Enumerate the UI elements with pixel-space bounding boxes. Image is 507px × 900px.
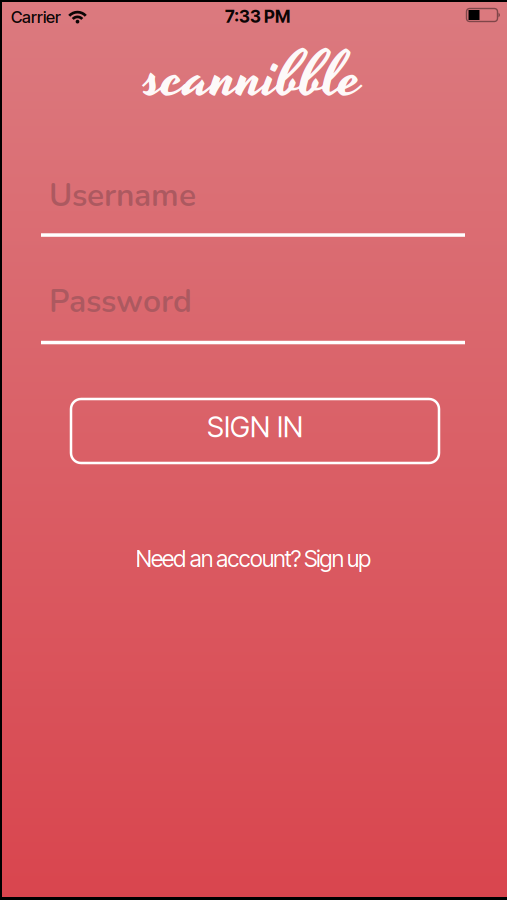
staticText: SIGN IN — [207, 410, 303, 444]
staticText: Need an account? Sign up — [136, 545, 371, 573]
staticText: 7:33 PM — [225, 6, 290, 27]
staticText: Password — [49, 280, 192, 323]
button[interactable]: Username — [41, 174, 465, 237]
staticText: Username — [49, 174, 196, 217]
button[interactable]: SIGN IN — [71, 399, 439, 463]
staticText: scannibble — [144, 30, 363, 126]
button[interactable]: Password — [41, 280, 465, 344]
staticText: Carrier — [11, 7, 61, 27]
button[interactable]: Need an account? Sign up — [136, 545, 371, 573]
